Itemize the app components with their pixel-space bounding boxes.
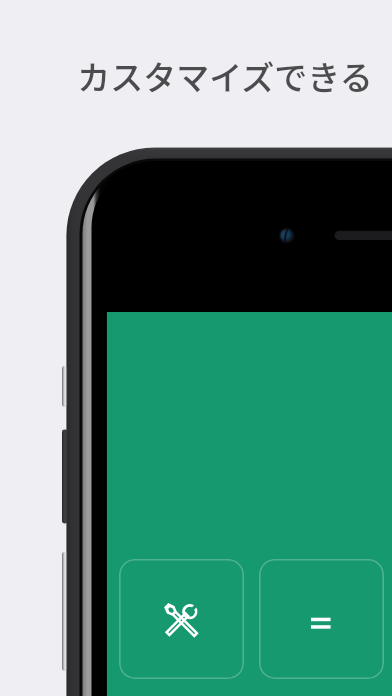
staticText: カスタマイズできる — [77, 52, 373, 100]
button[interactable]: Tools — [119, 559, 244, 679]
button[interactable]: Equals — [259, 559, 384, 679]
